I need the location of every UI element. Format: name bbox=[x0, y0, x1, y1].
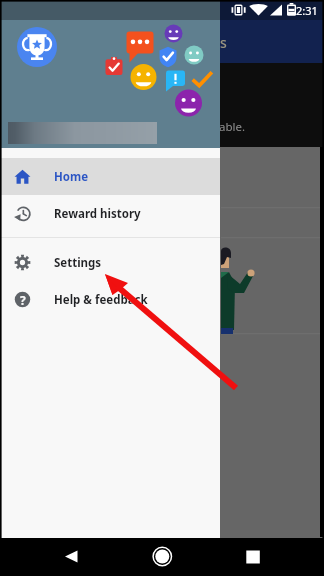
staticText: ? bbox=[20, 292, 26, 308]
staticText: Help & feedback bbox=[54, 292, 148, 308]
staticText: Reward history bbox=[54, 206, 141, 222]
staticText: Home bbox=[54, 169, 89, 185]
staticText: Settings bbox=[54, 255, 102, 271]
button[interactable]: Home bbox=[0, 158, 220, 195]
staticText: s bbox=[220, 33, 227, 52]
button[interactable]: Reward history bbox=[0, 195, 220, 232]
button[interactable]: ? bbox=[0, 281, 220, 318]
staticText: 2:31 bbox=[296, 3, 318, 18]
button[interactable]: Settings bbox=[0, 244, 220, 281]
staticText: able. bbox=[219, 119, 246, 135]
